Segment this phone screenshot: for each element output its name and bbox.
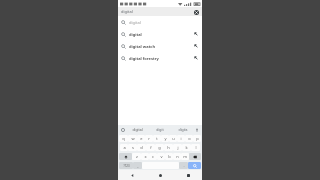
button[interactable]: y xyxy=(161,135,169,142)
button[interactable]: m xyxy=(181,153,189,160)
button[interactable]: r xyxy=(145,135,153,142)
staticText: z xyxy=(136,154,138,159)
button[interactable]: q xyxy=(119,135,128,142)
button[interactable]: Clear search xyxy=(193,9,199,15)
button[interactable]: x xyxy=(141,153,149,160)
button[interactable]: u xyxy=(169,135,177,142)
button[interactable]: Insert suggestion xyxy=(193,55,199,61)
button[interactable]: g xyxy=(155,144,164,151)
button[interactable]: k xyxy=(182,144,191,151)
button[interactable]: Home xyxy=(146,170,174,180)
staticText: q xyxy=(122,136,125,141)
staticText: g xyxy=(158,145,161,150)
staticText: m xyxy=(183,154,187,159)
button[interactable]: b xyxy=(165,153,173,160)
button[interactable]: digit xyxy=(148,127,171,132)
staticText: digital xyxy=(121,9,133,14)
button[interactable]: o xyxy=(185,135,193,142)
staticText: f xyxy=(150,145,152,150)
button[interactable]: digital xyxy=(118,7,202,16)
button[interactable]: p xyxy=(193,135,201,142)
button[interactable]: n xyxy=(173,153,181,160)
button[interactable]: digital forestry xyxy=(118,52,202,64)
button[interactable]: Insert suggestion xyxy=(193,31,199,37)
button[interactable]: Recents xyxy=(174,170,202,180)
button[interactable]: digits xyxy=(171,127,194,132)
button[interactable]: Search xyxy=(188,162,201,169)
staticText: ?123 xyxy=(123,164,130,168)
staticText: v xyxy=(160,154,163,159)
staticText: r xyxy=(148,136,150,141)
button[interactable]: a xyxy=(120,144,128,151)
staticText: u xyxy=(172,136,175,141)
button[interactable]: s xyxy=(128,144,137,151)
button[interactable]: Voice input xyxy=(194,127,200,133)
button[interactable]: t xyxy=(153,135,161,142)
staticText: o xyxy=(188,136,191,141)
staticText: , xyxy=(137,163,139,168)
button[interactable]: w xyxy=(128,135,137,142)
staticText: . xyxy=(183,163,185,168)
staticText: c xyxy=(152,154,154,159)
button[interactable]: , xyxy=(133,162,142,169)
staticText: w xyxy=(131,136,135,141)
staticText: n xyxy=(176,154,179,159)
staticText: digital watch xyxy=(129,44,156,49)
staticText: i xyxy=(180,136,182,141)
button[interactable]: Google xyxy=(120,127,126,133)
staticText: y xyxy=(164,136,167,141)
staticText: j xyxy=(177,145,179,150)
button[interactable]: i xyxy=(177,135,185,142)
button[interactable]: Insert suggestion xyxy=(193,43,199,49)
staticText: digital forestry xyxy=(129,56,159,61)
button[interactable]: h xyxy=(164,144,173,151)
button[interactable]: digital watch xyxy=(118,40,202,52)
staticText: digits xyxy=(178,127,188,132)
button[interactable]: f xyxy=(146,144,155,151)
button[interactable]: j xyxy=(173,144,182,151)
button[interactable]: ?123 xyxy=(119,162,133,169)
button[interactable]: Shift xyxy=(119,153,132,160)
button[interactable]: d xyxy=(137,144,146,151)
button[interactable]: digital xyxy=(118,28,202,40)
staticText: digit xyxy=(156,127,164,132)
button[interactable]: z xyxy=(132,153,141,160)
staticText: b xyxy=(168,154,171,159)
button[interactable]: digital xyxy=(118,16,202,28)
staticText: digital xyxy=(129,20,141,25)
staticText: t xyxy=(156,136,158,141)
staticText: d xyxy=(140,145,143,150)
staticText: e xyxy=(140,136,143,141)
staticText: x xyxy=(144,154,147,159)
button[interactable]: Backspace xyxy=(189,153,201,160)
button[interactable]: Back xyxy=(118,170,146,180)
staticText: a xyxy=(123,145,126,150)
button[interactable]: digital xyxy=(126,127,148,132)
button[interactable]: v xyxy=(157,153,165,160)
staticText: k xyxy=(185,145,188,150)
staticText: p xyxy=(196,136,199,141)
button[interactable]: c xyxy=(149,153,157,160)
staticText: digital xyxy=(129,32,142,37)
button[interactable]: l xyxy=(191,144,200,151)
staticText: s xyxy=(132,145,134,150)
staticText: l xyxy=(195,145,197,150)
staticText: h xyxy=(167,145,170,150)
button[interactable]: e xyxy=(137,135,145,142)
staticText: digital xyxy=(132,127,143,132)
